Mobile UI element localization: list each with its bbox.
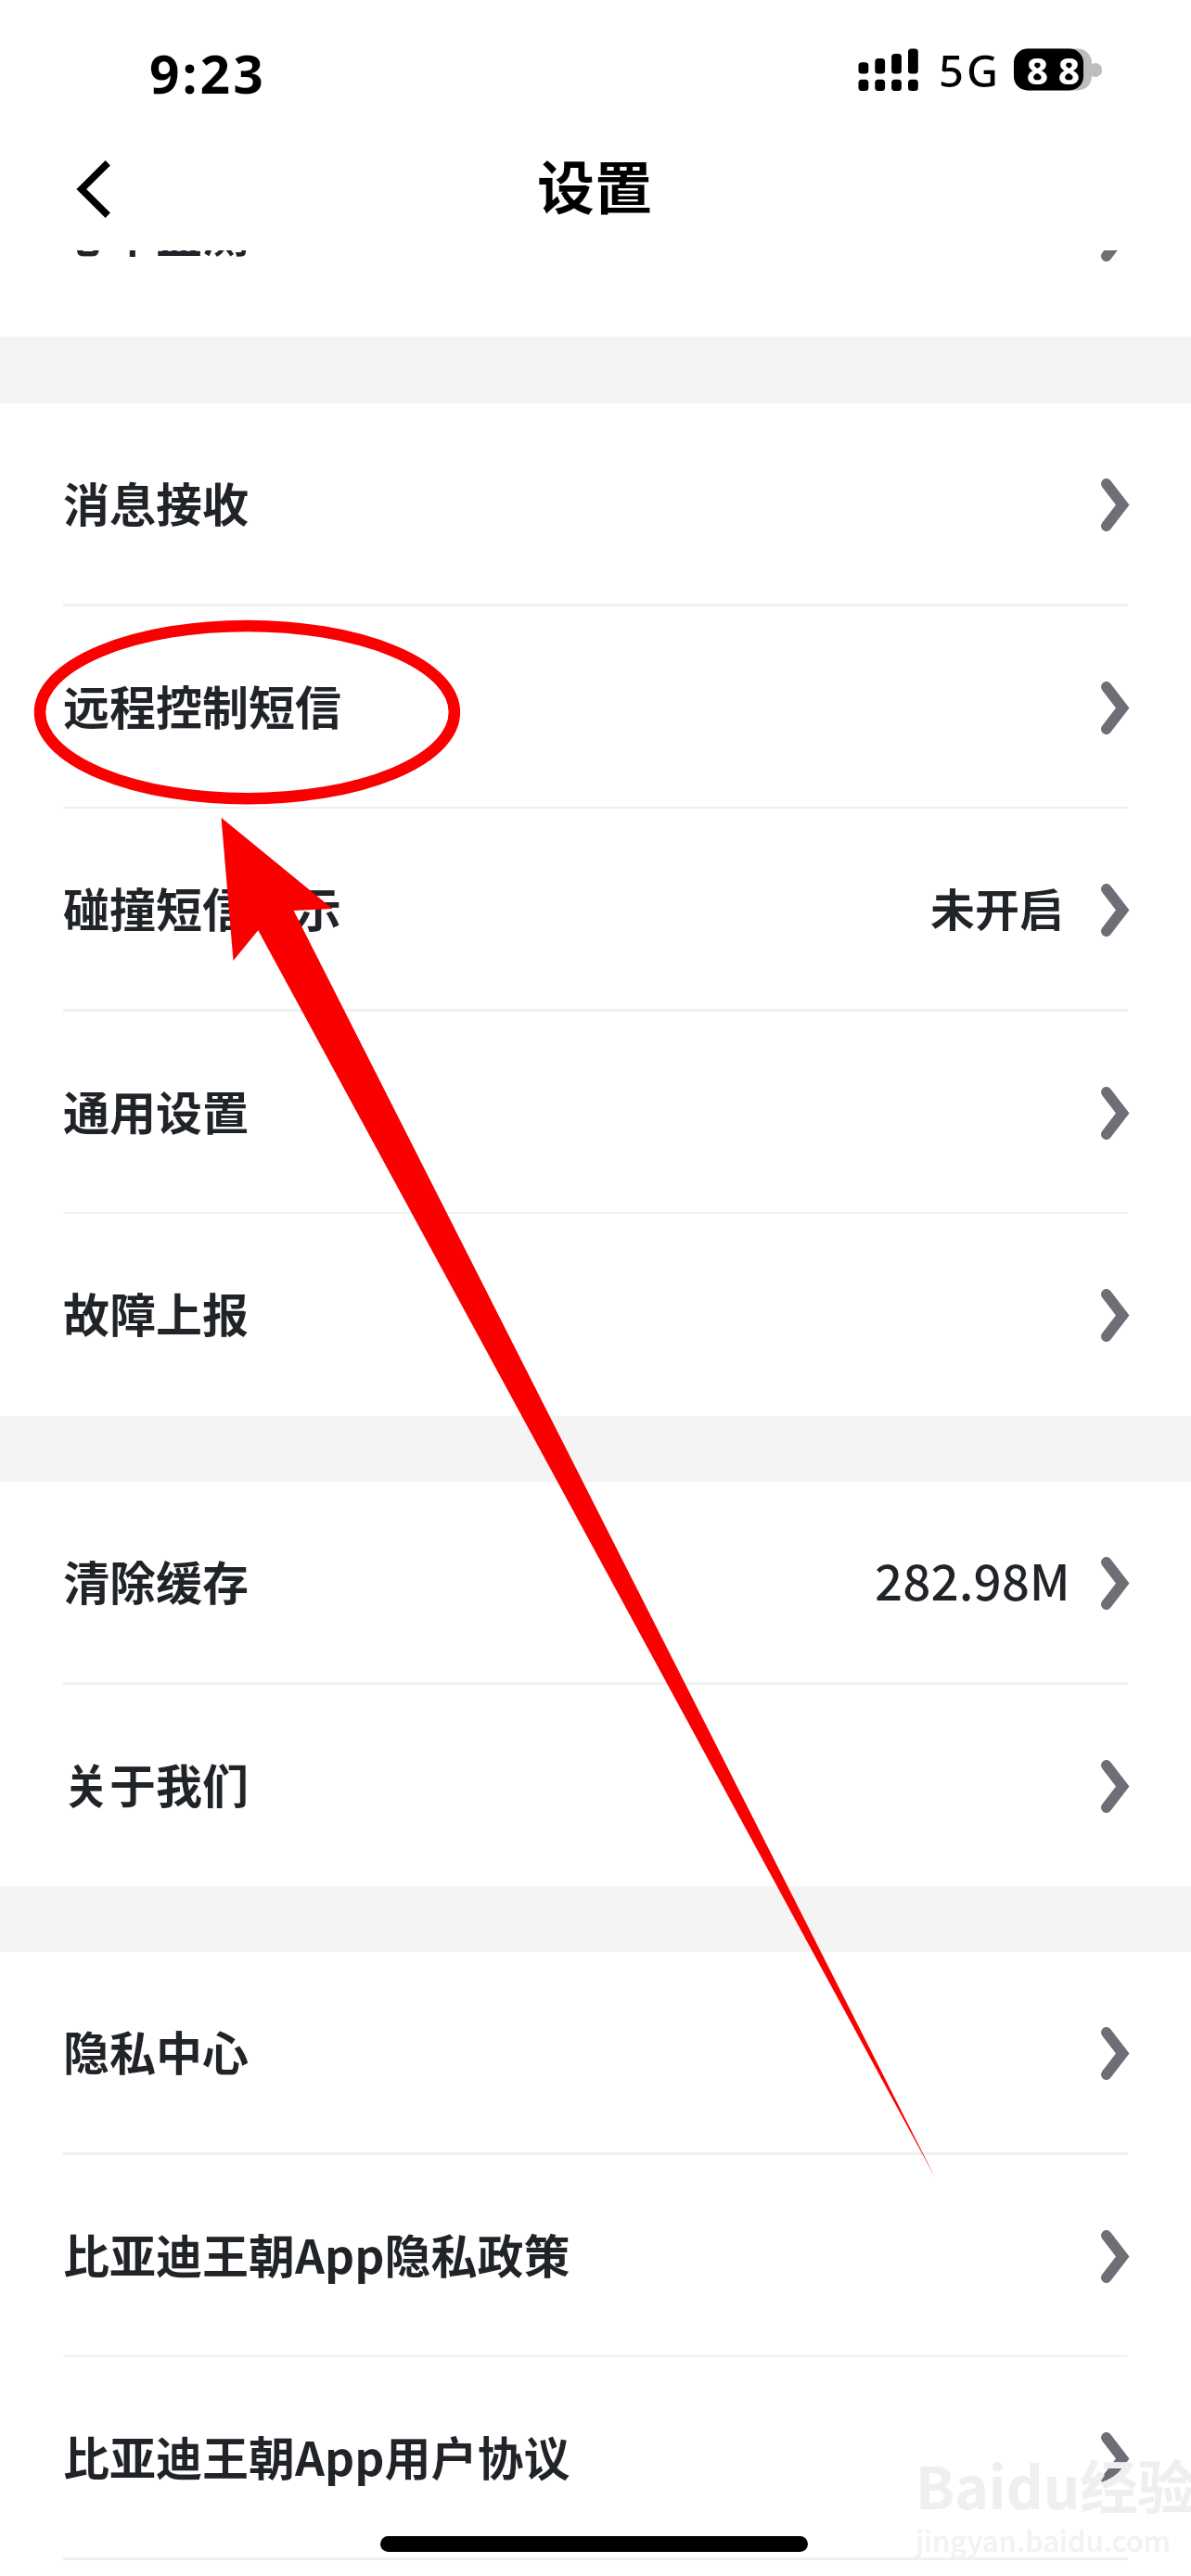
staticText: 消息接收 [63,468,249,535]
button[interactable]: Back [46,124,139,226]
staticText: 88 [1027,45,1090,95]
button[interactable]: 关于我们 [0,1685,1191,1888]
button[interactable]: 通用设置 [0,1012,1191,1215]
staticText: 比亚迪王朝App隐私政策 [63,2220,570,2287]
staticText: 故障上报 [63,1279,249,1345]
staticText: 隐私中心 [63,2017,249,2084]
button[interactable]: 远程控制短信 [0,606,1191,810]
staticText: 5G [939,41,1002,100]
staticText: 282.98M [875,1544,1070,1615]
staticText: 通用设置 [63,1077,249,1143]
staticText: Baidu经验 [916,2442,1191,2526]
button[interactable]: 比亚迪王朝App用户协议 [0,2357,1191,2560]
staticText: 清除缓存 [63,1547,249,1613]
staticText: 关于我们 [63,1750,249,1817]
staticText: jingyan.baidu.com [916,2519,1172,2560]
staticText: 远程控制短信 [63,671,341,738]
button[interactable]: 碰撞短信提示 [0,809,1191,1012]
staticText: 9:23 [149,37,266,109]
button[interactable]: 比亚迪王朝App隐私政策 [0,2155,1191,2358]
staticText: 心率监测 [63,198,249,265]
staticText: 设置 [537,143,653,226]
button[interactable]: 故障上报 [0,1214,1191,1417]
button[interactable]: 隐私中心 [0,1952,1191,2155]
staticText: 未开启 [930,874,1065,939]
staticText: 比亚迪王朝App用户协议 [63,2422,570,2489]
button[interactable]: 消息接收 [0,403,1191,606]
button[interactable]: 清除缓存 [0,1482,1191,1685]
staticText: 碰撞短信提示 [63,874,341,940]
